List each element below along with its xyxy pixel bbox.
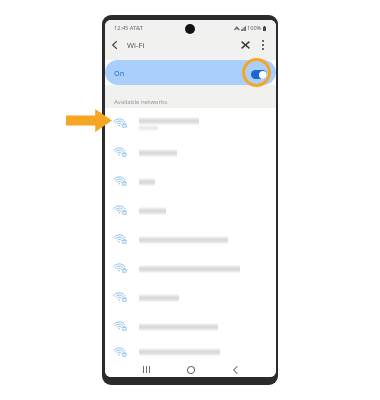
staticText: 12:45 AT&T: [114, 24, 143, 32]
staticText: On: [114, 68, 125, 78]
staticText: 100%: [247, 24, 262, 32]
button[interactable]: Home: [183, 362, 199, 377]
button[interactable]: [105, 282, 276, 311]
button[interactable]: [105, 166, 276, 195]
button[interactable]: [105, 108, 276, 137]
button[interactable]: [105, 137, 276, 166]
button[interactable]: Back: [105, 36, 123, 53]
button[interactable]: [105, 311, 276, 340]
staticText: Wi-Fi: [127, 40, 145, 50]
button[interactable]: On: [105, 60, 276, 85]
staticText: Available networks: [114, 98, 168, 106]
button[interactable]: [105, 253, 276, 282]
button[interactable]: Scan QR code: [236, 36, 254, 53]
button[interactable]: [105, 340, 276, 362]
button[interactable]: Recent apps: [138, 362, 154, 377]
button[interactable]: More options: [254, 36, 272, 53]
button[interactable]: [105, 224, 276, 253]
button[interactable]: [105, 195, 276, 224]
button[interactable]: Back: [227, 362, 243, 377]
